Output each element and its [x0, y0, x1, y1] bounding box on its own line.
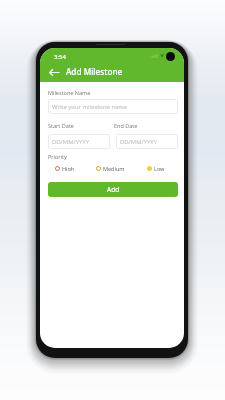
button[interactable]: Low [147, 165, 165, 171]
button[interactable]: DD/MM/YYYY [48, 134, 110, 149]
staticText: Priority [48, 153, 67, 160]
staticText: Low [154, 165, 165, 171]
button[interactable]: Back [45, 66, 63, 79]
button[interactable]: Write your milestone name [48, 99, 178, 114]
staticText: Write your milestone name [52, 103, 128, 111]
staticText: End Date [114, 122, 138, 129]
staticText: Medium [103, 165, 125, 171]
staticText: DD/MM/YYYY [52, 138, 90, 146]
staticText: Add Milestone [66, 66, 123, 77]
button[interactable]: DD/MM/YYYY [116, 134, 178, 149]
button[interactable]: High [55, 165, 75, 171]
staticText: Start Date [48, 122, 74, 129]
staticText: 3:54 [54, 53, 66, 61]
staticText: High [62, 165, 75, 171]
staticText: DD/MM/YYYY [120, 138, 158, 146]
staticText: Milestone Name [48, 89, 91, 96]
button[interactable]: Medium [96, 165, 125, 171]
staticText: Add [107, 185, 120, 194]
button[interactable]: Add [48, 182, 178, 197]
